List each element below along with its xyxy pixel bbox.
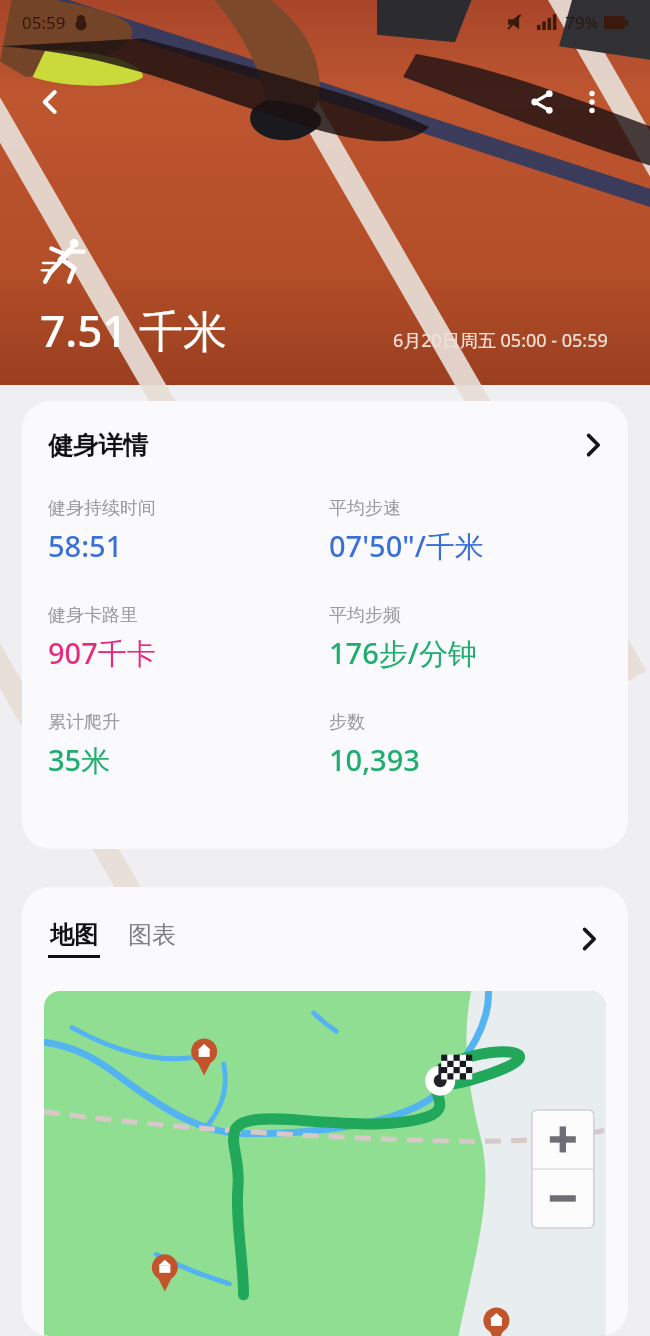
staticText: 健身详情 <box>48 430 148 461</box>
staticText: 平均步频 <box>329 604 401 627</box>
button[interactable]: 图表 <box>128 920 176 950</box>
button[interactable]: 健身详情 <box>22 401 628 489</box>
staticText: 地图 <box>50 920 98 950</box>
staticText: 图表 <box>128 920 176 950</box>
staticText: 07'50"/千米 <box>329 526 484 566</box>
button[interactable]: Share <box>518 78 566 126</box>
staticText: 累计爬升 <box>48 711 120 734</box>
staticText: 58:51 <box>48 526 123 565</box>
button[interactable]: More options <box>568 78 616 126</box>
button[interactable]: 地图 <box>48 920 100 958</box>
staticText: 健身持续时间 <box>48 497 156 520</box>
staticText: 健身卡路里 <box>48 604 138 627</box>
staticText: 907千卡 <box>48 633 156 673</box>
button[interactable]: Back <box>26 78 74 126</box>
staticText: 35米 <box>48 740 111 780</box>
staticText: 79% <box>565 11 599 34</box>
staticText: 176步/分钟 <box>329 633 477 673</box>
staticText: 6月20日周五 05:00 - 05:59 <box>393 328 608 353</box>
button[interactable]: Open map <box>572 922 606 956</box>
staticText: 05:59 <box>22 11 66 34</box>
staticText: 7.51 千米 <box>40 300 227 360</box>
staticText: 平均步速 <box>329 497 401 520</box>
staticText: 10,393 <box>329 740 420 779</box>
staticText: 步数 <box>329 711 365 734</box>
button[interactable]: Route map <box>44 991 606 1336</box>
